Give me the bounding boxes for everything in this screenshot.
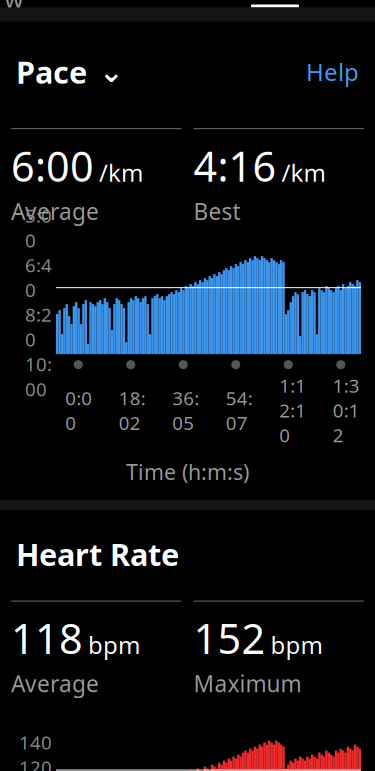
staticText: bpm [88,629,140,661]
staticText: 6:00 [11,138,94,193]
staticText: 54:07 [226,385,253,435]
staticText: /km [99,156,143,188]
staticText: 152 [193,611,265,665]
staticText: 1:30:12 [333,373,360,447]
staticText: Time (h:m:s) [126,457,249,486]
staticText: 8:20 [25,302,52,352]
staticText: Average [11,196,99,226]
staticText: /km [281,156,325,188]
staticText: Best [193,196,240,226]
staticText: 118 [11,611,83,665]
staticText: 5:00 [25,203,52,253]
staticText: 140 [19,730,52,755]
button[interactable]: Pace [16,43,124,100]
button[interactable]: Help [294,48,359,96]
button[interactable]: Charts [236,0,314,7]
staticText: Maximum [193,668,301,699]
staticText: 1:12:10 [279,373,306,447]
staticText: 0:00 [65,385,92,435]
button[interactable]: Overview [0,0,104,7]
staticText: 10:00 [25,352,52,401]
staticText: Help [306,56,359,88]
staticText: Pace [16,51,87,92]
staticText: bpm [270,629,322,661]
staticText: ⌄ [99,55,124,88]
staticText: 120 [19,755,52,771]
staticText: 4:16 [193,138,276,193]
staticText: Heart Rate [16,534,179,575]
staticText: Overview [4,0,99,15]
staticText: 18:02 [119,385,146,435]
staticText: 6:40 [25,253,52,302]
staticText: Average [11,668,99,699]
staticText: 36:05 [172,385,199,435]
